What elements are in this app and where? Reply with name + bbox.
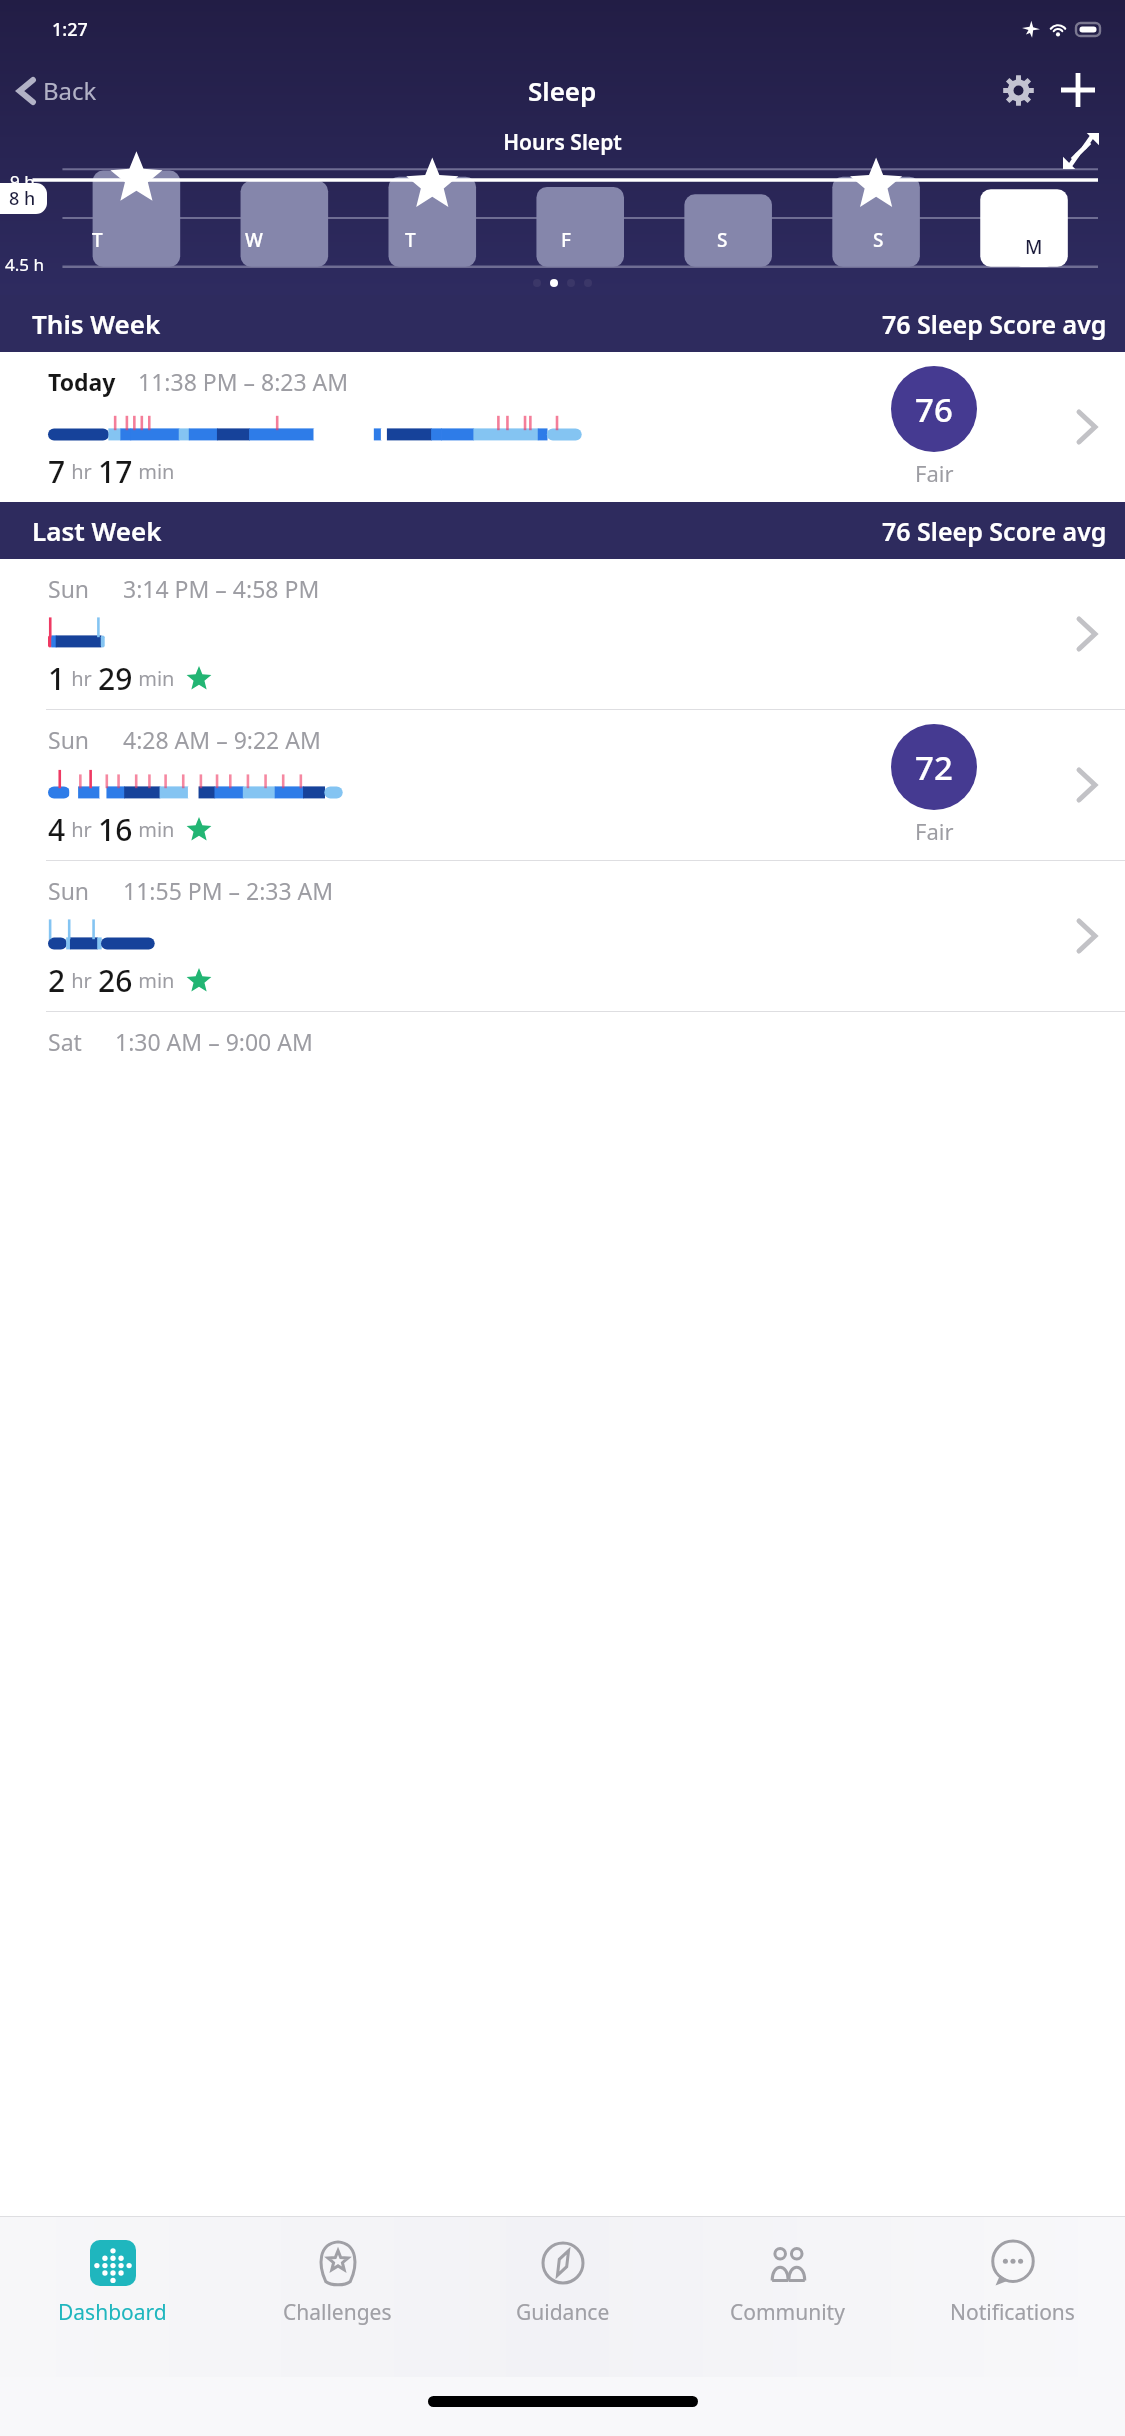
staticText: 11:55 PM – 2:33 AM <box>123 875 334 906</box>
button[interactable]: Sun <box>0 559 1125 709</box>
staticText: T <box>92 227 103 253</box>
button[interactable]: Dashboard <box>0 2233 225 2331</box>
staticText: Today <box>48 366 116 397</box>
staticText: min <box>133 816 175 843</box>
staticText: min <box>133 967 175 994</box>
staticText: Hours Slept <box>0 128 1125 157</box>
staticText: 8 h <box>9 186 36 211</box>
button[interactable]: Guidance <box>450 2233 675 2331</box>
staticText: 1 <box>48 658 66 699</box>
button[interactable]: Add sleep log <box>1053 65 1103 115</box>
staticText: 7 <box>48 451 66 492</box>
staticText: Fair <box>915 816 954 846</box>
staticText: 3:14 PM – 4:58 PM <box>123 573 320 604</box>
staticText: 1:27 <box>52 17 88 42</box>
button[interactable]: Expand chart <box>1055 125 1107 177</box>
staticText: 29 <box>98 658 133 699</box>
staticText: min <box>133 458 175 485</box>
staticText: 17 <box>98 451 133 492</box>
staticText: 0 <box>16 335 26 358</box>
staticText: Challenges <box>283 2298 392 2327</box>
staticText: Fair <box>915 458 954 488</box>
staticText: This Week <box>32 306 161 341</box>
staticText: 11:38 PM – 8:23 AM <box>138 366 349 397</box>
staticText: Dashboard <box>58 2298 167 2327</box>
staticText: Notifications <box>950 2298 1075 2327</box>
button[interactable]: Sun <box>0 861 1125 1011</box>
staticText: Back <box>43 74 97 107</box>
staticText: Guidance <box>516 2298 610 2327</box>
staticText: hr <box>66 816 98 843</box>
staticText: T <box>405 227 416 253</box>
staticText: 4.5 h <box>5 253 44 276</box>
staticText: S <box>873 227 884 253</box>
staticText: 1:30 AM – 9:00 AM <box>115 1026 313 1057</box>
staticText: 76 <box>915 387 953 432</box>
button[interactable]: Back <box>10 66 105 115</box>
staticText: Sat <box>48 1026 82 1057</box>
staticText: min <box>133 665 175 692</box>
staticText: 4:28 AM – 9:22 AM <box>123 724 321 755</box>
button[interactable]: Notifications <box>900 2233 1125 2331</box>
staticText: Sun <box>48 724 90 755</box>
staticText: Last Week <box>32 513 162 548</box>
staticText: W <box>245 227 263 253</box>
staticText: Community <box>730 2298 845 2327</box>
staticText: S <box>717 227 728 253</box>
staticText: Sun <box>48 875 90 906</box>
button[interactable]: Community <box>675 2233 900 2331</box>
button[interactable]: Sun <box>0 710 1125 860</box>
staticText: Sun <box>48 573 90 604</box>
staticText: hr <box>66 665 98 692</box>
staticText: 76 Sleep Score avg <box>882 514 1107 548</box>
button[interactable]: Settings <box>993 65 1043 115</box>
staticText: 4 <box>48 809 66 850</box>
staticText: 9 h <box>10 170 35 193</box>
staticText: hr <box>66 458 98 485</box>
staticText: Sleep <box>528 73 597 108</box>
button[interactable]: Challenges <box>225 2233 450 2331</box>
staticText: 26 <box>98 960 133 1001</box>
staticText: 2 <box>48 960 66 1001</box>
staticText: 76 Sleep Score avg <box>882 307 1107 341</box>
staticText: M <box>1025 234 1043 260</box>
staticText: 16 <box>98 809 133 850</box>
staticText: hr <box>66 967 98 994</box>
button[interactable]: Today <box>0 352 1125 502</box>
staticText: F <box>561 227 572 253</box>
staticText: 72 <box>915 745 953 790</box>
